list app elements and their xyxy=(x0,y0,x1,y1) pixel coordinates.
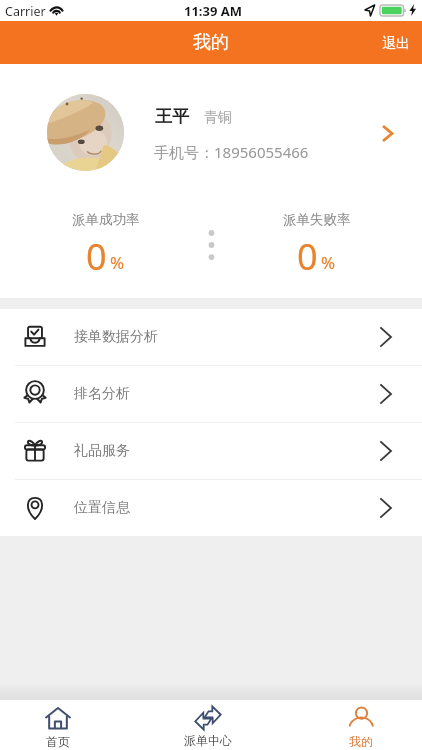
staticText: 礼品服务 xyxy=(74,442,130,460)
staticText: 11:39 AM xyxy=(184,2,243,20)
staticText: 青铜 xyxy=(204,109,232,127)
button[interactable]: 我的 xyxy=(303,700,419,750)
staticText: Carrier xyxy=(5,3,46,20)
staticText: 排名分析 xyxy=(74,385,130,403)
staticText: 派单中心 xyxy=(184,733,232,748)
button[interactable]: 接单数据分析 xyxy=(0,309,422,365)
staticText: 派单成功率 xyxy=(72,211,140,228)
staticText: 退出 xyxy=(382,35,410,53)
staticText: 0 xyxy=(86,232,107,281)
button[interactable]: 排名分析 xyxy=(0,366,422,422)
button[interactable]: 退出 xyxy=(366,21,422,64)
staticText: 派单失败率 xyxy=(283,211,351,228)
staticText: 我的 xyxy=(193,31,229,54)
staticText: 首页 xyxy=(46,734,70,749)
button[interactable]: 首页 xyxy=(0,700,116,750)
staticText: % xyxy=(321,251,336,274)
button[interactable]: 派单中心 xyxy=(150,700,266,750)
staticText: 王平 xyxy=(155,106,189,127)
staticText: % xyxy=(110,251,125,274)
staticText: 接单数据分析 xyxy=(74,328,158,346)
staticText: 位置信息 xyxy=(74,499,130,517)
staticText: 手机号：18956055466 xyxy=(154,142,309,162)
staticText: 0 xyxy=(297,232,318,281)
button[interactable]: 王平 xyxy=(0,64,422,190)
button[interactable]: 位置信息 xyxy=(0,480,422,536)
staticText: 我的 xyxy=(349,734,373,749)
button[interactable]: 礼品服务 xyxy=(0,423,422,479)
